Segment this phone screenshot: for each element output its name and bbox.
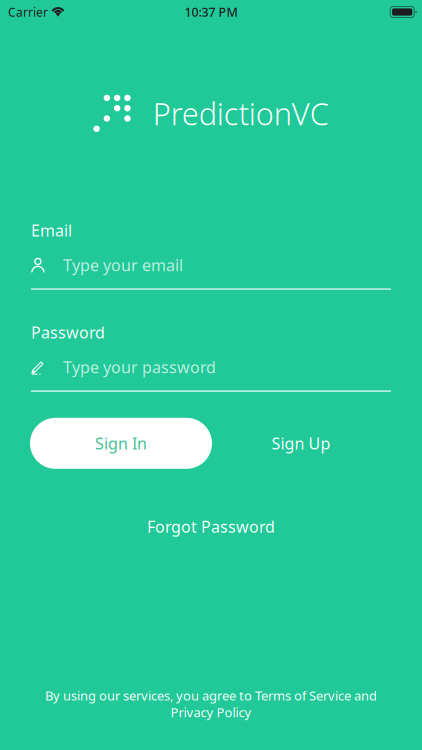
button[interactable]: Sign In <box>30 418 212 469</box>
button[interactable]: Forgot Password <box>147 516 275 537</box>
staticText: Sign Up <box>271 433 330 454</box>
staticText: PredictionVC <box>153 93 329 134</box>
button[interactable]: Sign Up <box>256 418 346 469</box>
staticText: By using our services, you agree to Term… <box>45 687 377 704</box>
staticText: 10:37 PM <box>184 4 237 20</box>
staticText: Sign In <box>95 433 147 454</box>
staticText: Type your password <box>63 356 216 378</box>
staticText: Email <box>31 220 72 241</box>
staticText: Type your email <box>63 254 183 275</box>
staticText: Carrier <box>8 4 48 20</box>
staticText: Password <box>31 322 105 343</box>
staticText: Forgot Password <box>147 516 275 537</box>
staticText: Privacy Policy <box>170 703 251 721</box>
